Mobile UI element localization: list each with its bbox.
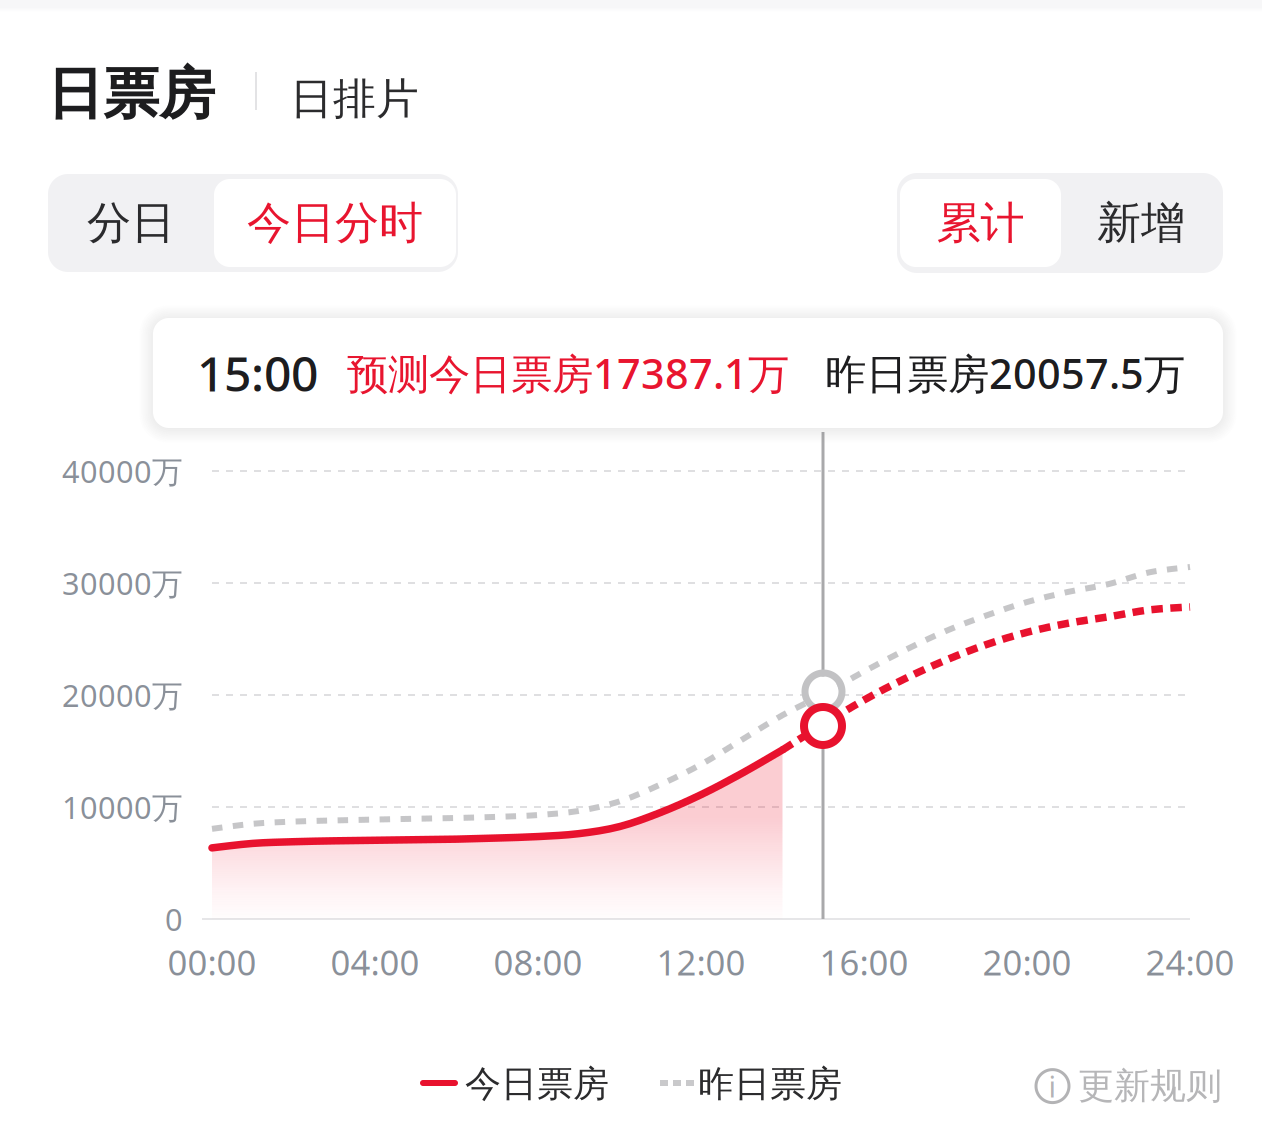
- staticText: 30000万: [62, 563, 183, 603]
- staticText: 分日: [87, 196, 175, 250]
- staticText: 20000万: [62, 675, 183, 715]
- button[interactable]: 更新规则: [1036, 1064, 1222, 1108]
- staticText: 今日分时: [247, 196, 423, 250]
- button[interactable]: 今日分时: [214, 179, 456, 267]
- button[interactable]: 日票房: [47, 61, 217, 127]
- staticText: 12:00: [656, 939, 745, 985]
- staticText: 40000万: [62, 451, 183, 491]
- staticText: 0: [165, 899, 183, 939]
- button[interactable]: 日排片: [290, 74, 430, 124]
- button[interactable]: 累计: [900, 179, 1061, 267]
- staticText: 20:00: [982, 939, 1071, 985]
- staticText: 更新规则: [1078, 1064, 1222, 1108]
- staticText: 预测今日票房17387.1万: [347, 346, 789, 400]
- staticText: 累计: [936, 196, 1024, 250]
- staticText: 04:00: [330, 939, 419, 985]
- staticText: i: [1048, 1067, 1056, 1106]
- button[interactable]: 分日: [48, 174, 214, 272]
- staticText: 24:00: [1145, 939, 1234, 985]
- button[interactable]: 今日票房: [465, 1062, 610, 1106]
- staticText: 日排片: [290, 73, 419, 125]
- button[interactable]: 昨日票房: [698, 1062, 843, 1106]
- staticText: 日票房: [47, 60, 215, 128]
- staticText: 15:00: [197, 341, 318, 405]
- staticText: 昨日票房: [698, 1062, 842, 1106]
- staticText: 16:00: [819, 939, 908, 985]
- staticText: 昨日票房20057.5万: [825, 346, 1185, 400]
- staticText: 10000万: [62, 787, 183, 827]
- staticText: 新增: [1097, 196, 1185, 250]
- button[interactable]: 新增: [1061, 173, 1221, 273]
- staticText: 00:00: [167, 939, 256, 985]
- staticText: 今日票房: [465, 1062, 609, 1106]
- staticText: 08:00: [493, 939, 582, 985]
